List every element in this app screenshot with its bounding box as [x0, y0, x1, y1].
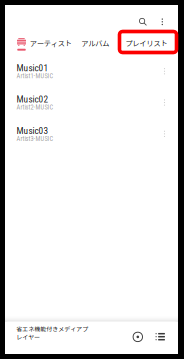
staticText: アルバム [81, 38, 109, 48]
button[interactable]: Library [10, 34, 32, 54]
staticText: アーティスト [30, 38, 72, 48]
button[interactable]: アルバム [79, 33, 111, 53]
staticText: Music03 [16, 125, 48, 136]
button[interactable]: Play [128, 327, 148, 347]
button[interactable]: Search [135, 14, 151, 30]
button[interactable]: Play queue [150, 327, 170, 347]
button[interactable]: Music02 [5, 87, 178, 118]
staticText: Artist2-MUSIC [16, 104, 53, 111]
staticText: Music01 [16, 63, 48, 73]
staticText: Music02 [16, 94, 48, 105]
button[interactable]: プレイリスト [124, 33, 168, 53]
button[interactable]: Music01 [5, 56, 178, 87]
staticText: Artist1-MUSIC [16, 72, 53, 80]
staticText: 省エネ機能付きメディアプ [16, 324, 88, 333]
button[interactable]: アーティスト [29, 33, 73, 53]
staticText: プレイリスト [125, 38, 167, 48]
staticText: Artist3-MUSIC [16, 135, 53, 142]
staticText: レイヤー [16, 333, 40, 341]
button[interactable]: More options [155, 14, 169, 30]
button[interactable]: Music03 [5, 118, 178, 149]
